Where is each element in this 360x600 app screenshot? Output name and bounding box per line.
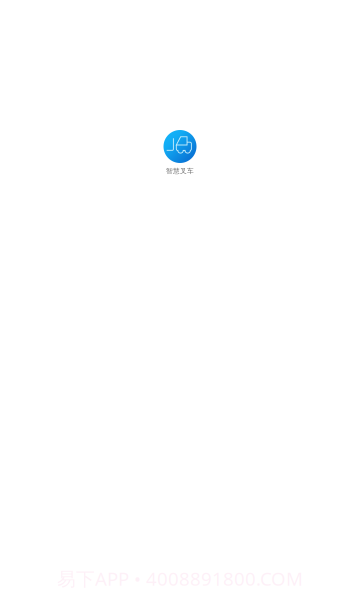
- button[interactable]: 智慧叉车: [163, 130, 197, 175]
- staticText: 智慧叉车: [166, 167, 194, 175]
- staticText: 易下APP • 4008891800.COM: [57, 566, 303, 591]
